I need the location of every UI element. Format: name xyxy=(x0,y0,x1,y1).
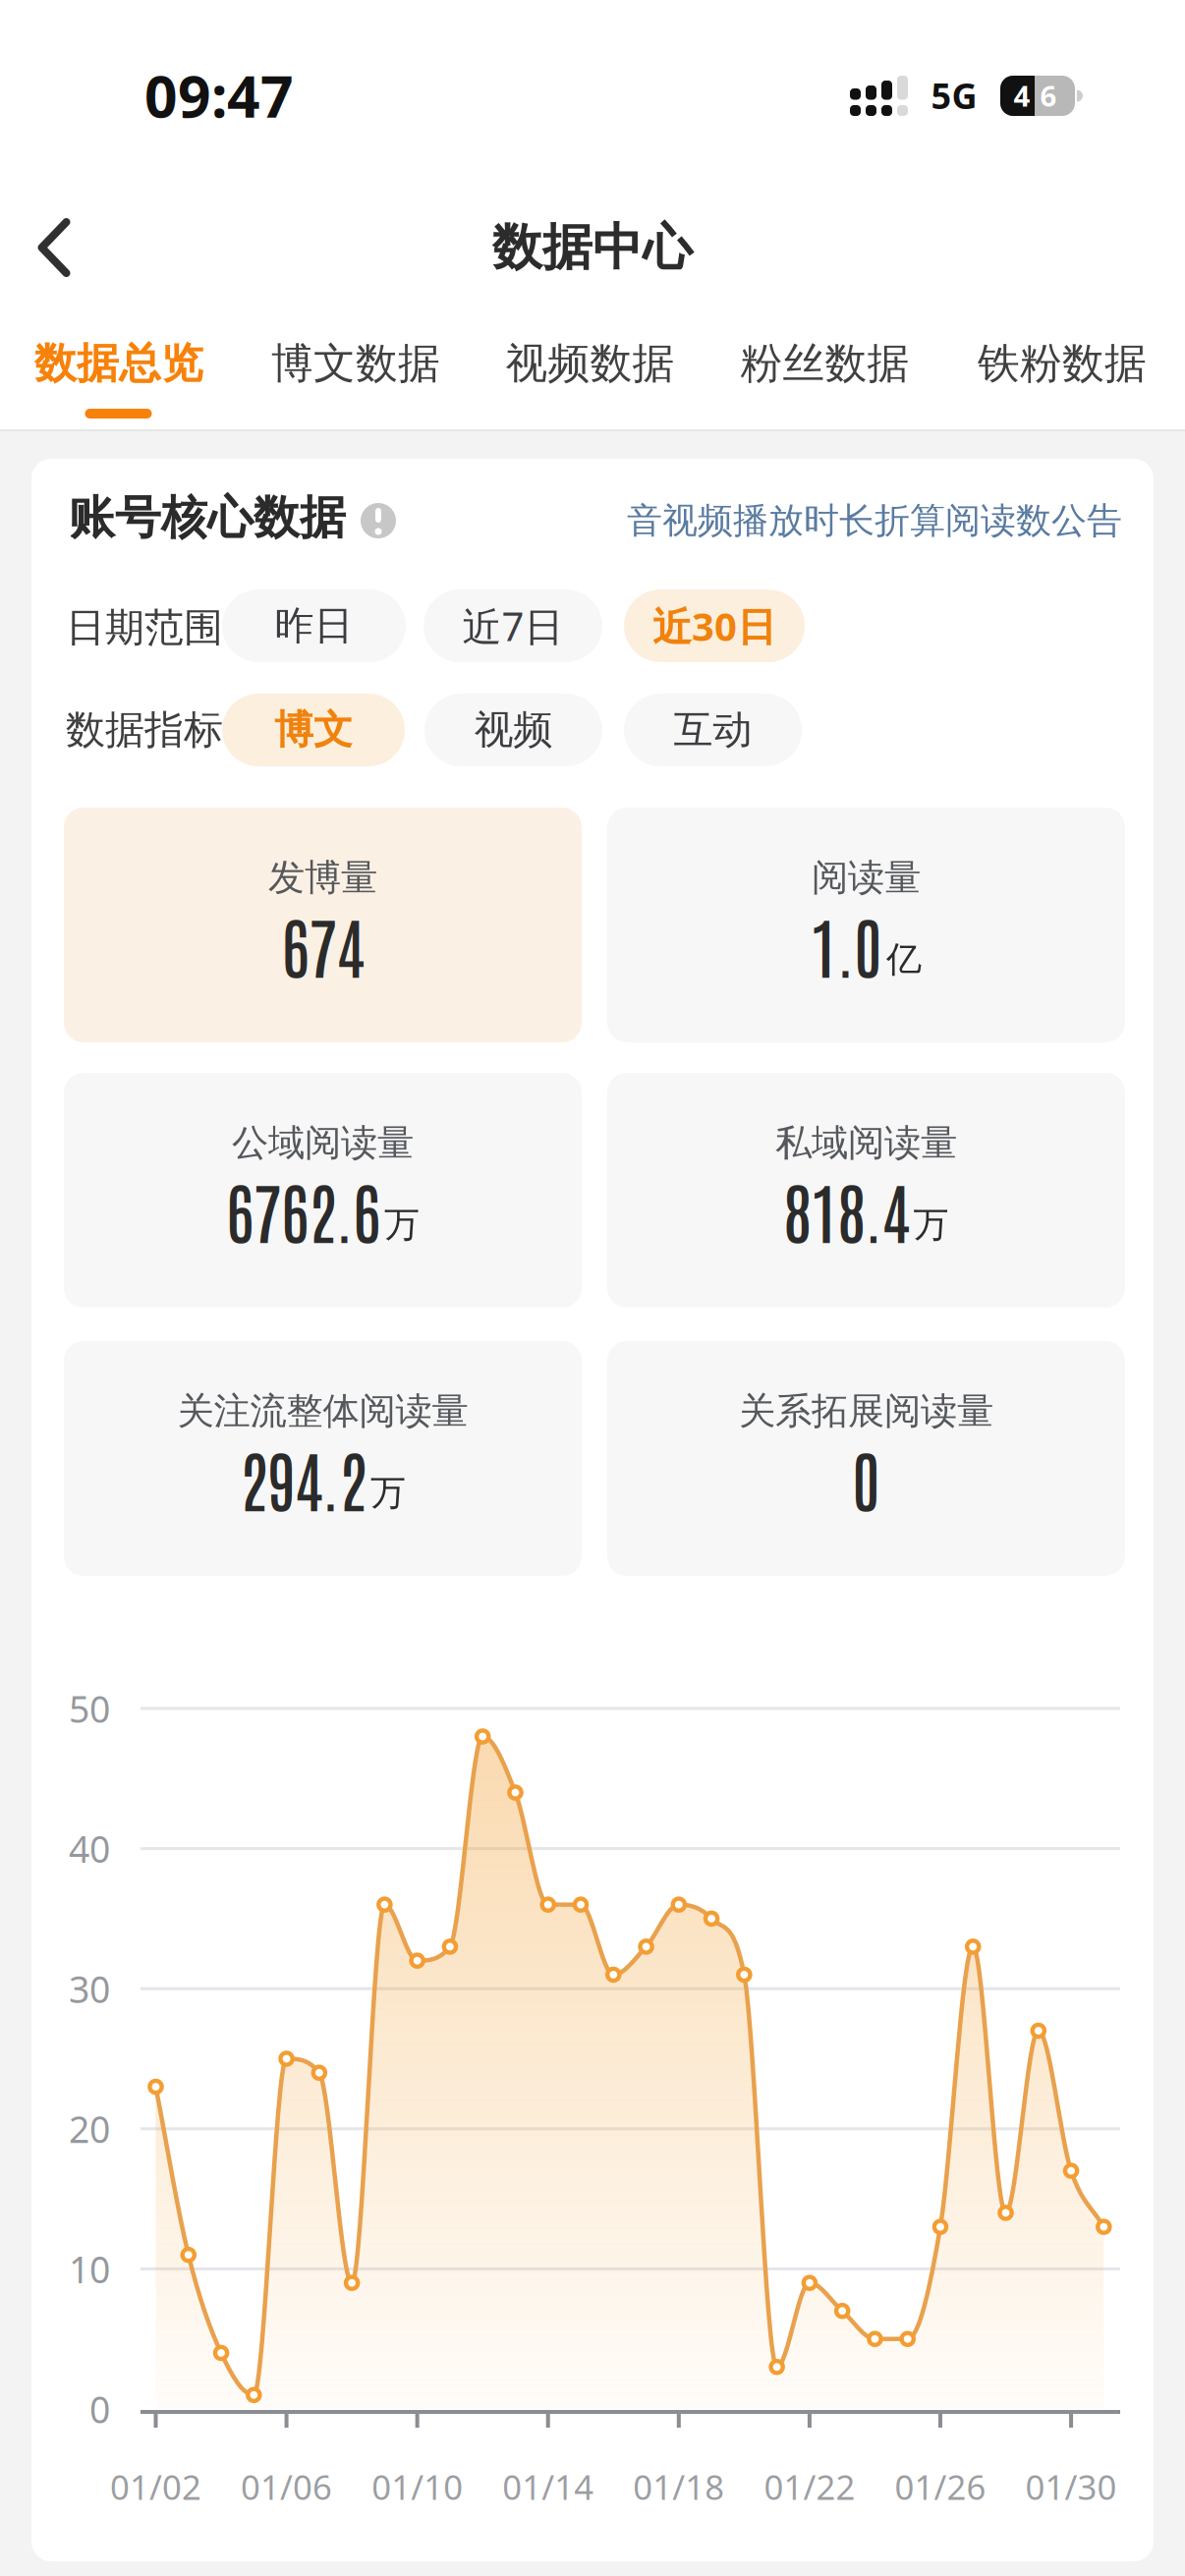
button[interactable]: 关系拓展阅读量 xyxy=(607,1341,1125,1576)
staticText: 私域阅读量 xyxy=(775,1120,957,1165)
staticText: 01/30 xyxy=(1025,2464,1117,2509)
button[interactable]: 铁粉数据 xyxy=(954,319,1170,408)
button[interactable]: 近30日 xyxy=(624,589,805,662)
staticText: 01/02 xyxy=(110,2464,201,2509)
staticText: 昨日 xyxy=(275,602,353,650)
button[interactable]: 视频 xyxy=(424,694,602,766)
staticText: 01/10 xyxy=(372,2464,463,2509)
staticText: 视频数据 xyxy=(506,338,675,389)
staticText: 音视频播放时长折算阅读数公告 xyxy=(627,499,1122,542)
button[interactable]: 返回 xyxy=(42,222,66,273)
staticText: 6762.6 xyxy=(226,1167,380,1252)
button[interactable]: 视频数据 xyxy=(482,319,698,408)
staticText: 关系拓展阅读量 xyxy=(739,1389,993,1434)
staticText: 粉丝数据 xyxy=(740,338,909,389)
button[interactable]: 公域阅读量 xyxy=(64,1073,582,1308)
staticText: 亿 xyxy=(886,938,922,981)
staticText: 10 xyxy=(69,2245,110,2293)
button[interactable]: 粉丝数据 xyxy=(717,319,933,408)
staticText: 40 xyxy=(69,1824,110,1873)
staticText: 数据中心 xyxy=(492,217,693,278)
staticText: 互动 xyxy=(674,706,752,754)
staticText: 4 xyxy=(1014,76,1030,114)
staticText: 0 xyxy=(89,2385,110,2433)
staticText: 50 xyxy=(69,1684,110,1733)
staticText: 20 xyxy=(69,2104,110,2153)
staticText: 万 xyxy=(370,1471,406,1514)
staticText: 阅读量 xyxy=(812,855,921,900)
staticText: 1.0 xyxy=(811,902,882,987)
staticText: 日期范围 xyxy=(66,604,223,652)
staticText: 01/06 xyxy=(241,2464,332,2509)
staticText: 近7日 xyxy=(462,600,564,652)
button[interactable]: 音视频播放时长折算阅读数公告 xyxy=(627,499,1122,542)
staticText: 30 xyxy=(69,1964,110,2013)
button[interactable]: 私域阅读量 xyxy=(607,1073,1125,1308)
button[interactable]: 博文 xyxy=(222,694,405,766)
staticText: 铁粉数据 xyxy=(978,338,1147,389)
button[interactable]: 互动 xyxy=(624,694,802,766)
staticText: 0 xyxy=(852,1436,880,1520)
button[interactable]: 说明 xyxy=(357,499,400,542)
button[interactable]: 昨日 xyxy=(222,589,406,662)
button[interactable]: 关注流整体阅读量 xyxy=(64,1341,582,1576)
button[interactable]: 发博量 xyxy=(64,808,582,1042)
staticText: 01/18 xyxy=(633,2464,724,2509)
staticText: 关注流整体阅读量 xyxy=(177,1389,468,1434)
staticText: 数据总览 xyxy=(34,338,203,389)
staticText: 博文数据 xyxy=(271,338,440,389)
button[interactable]: 博文数据 xyxy=(248,319,464,408)
staticText: 近30日 xyxy=(652,600,776,652)
staticText: 视频 xyxy=(474,706,553,754)
staticText: 01/26 xyxy=(895,2464,986,2509)
button[interactable]: 近7日 xyxy=(423,589,602,662)
staticText: 发博量 xyxy=(268,855,377,900)
staticText: 公域阅读量 xyxy=(232,1120,414,1165)
staticText: 674 xyxy=(282,902,364,987)
staticText: 博文 xyxy=(274,706,353,754)
staticText: 万 xyxy=(913,1203,949,1246)
button[interactable]: 数据总览 xyxy=(11,319,227,408)
staticText: 09:47 xyxy=(144,57,294,134)
staticText: 账号核心数据 xyxy=(69,490,346,546)
staticText: 294.2 xyxy=(240,1436,367,1520)
button[interactable]: 阅读量 xyxy=(607,808,1125,1042)
staticText: 万 xyxy=(384,1203,420,1246)
staticText: 01/22 xyxy=(764,2464,855,2509)
staticText: 01/14 xyxy=(502,2464,594,2509)
staticText: 数据指标 xyxy=(66,706,223,754)
staticText: 6 xyxy=(1040,76,1057,114)
staticText: 818.4 xyxy=(784,1167,909,1252)
staticText: 5G xyxy=(931,72,977,119)
